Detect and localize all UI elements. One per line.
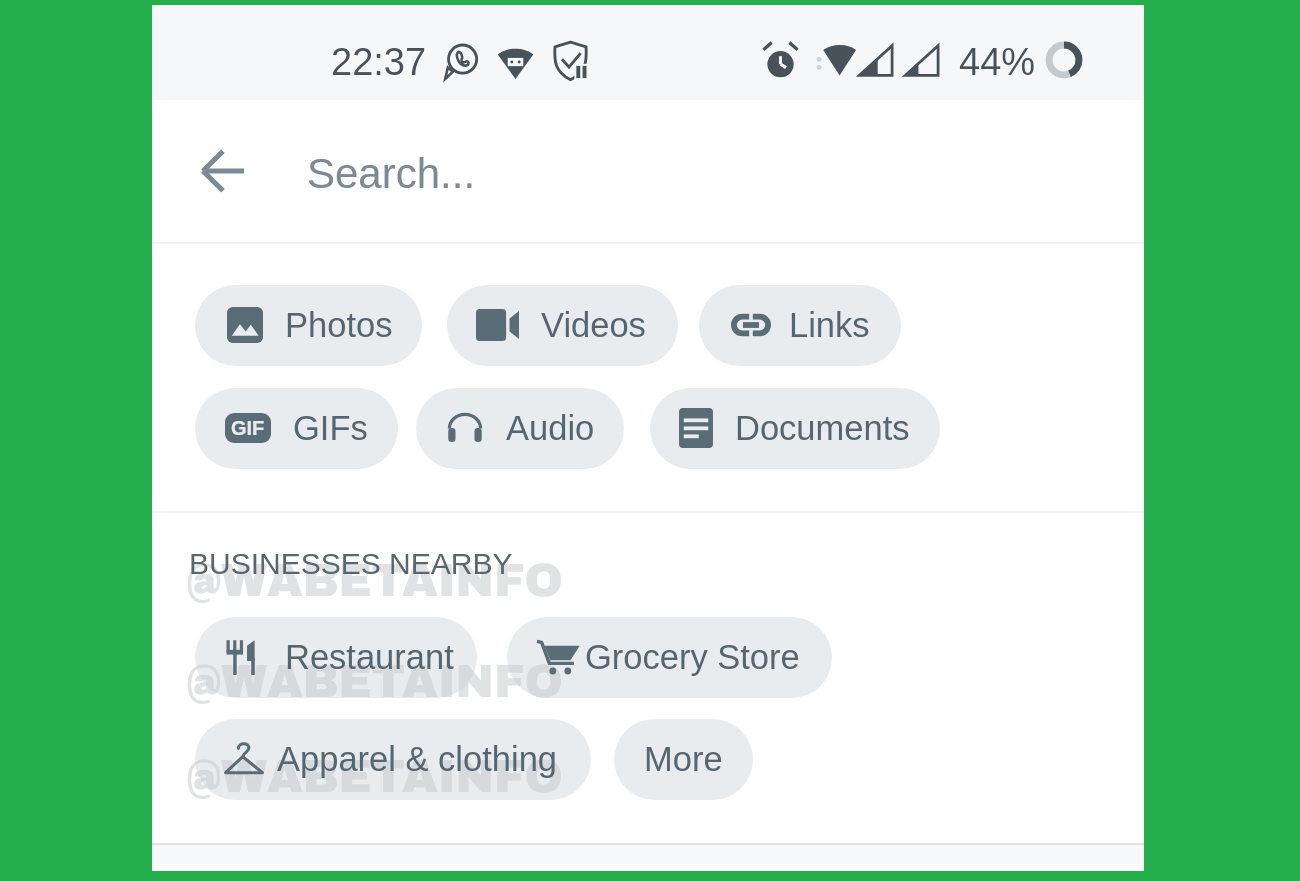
staticText: Links <box>789 306 870 345</box>
button[interactable] <box>447 285 678 366</box>
button[interactable] <box>195 719 591 800</box>
button[interactable] <box>195 617 477 698</box>
staticText: Audio <box>506 409 595 448</box>
staticText: BUSINESSES NEARBY <box>189 547 513 581</box>
staticText: Photos <box>285 306 393 345</box>
button[interactable] <box>507 617 832 698</box>
button[interactable]: Back <box>191 139 255 203</box>
button[interactable] <box>614 719 753 800</box>
button[interactable]: Search... <box>290 100 850 242</box>
staticText: More <box>644 740 723 779</box>
staticText: GIF <box>231 417 265 439</box>
staticText: Videos <box>541 306 646 345</box>
staticText: 22:37 <box>331 41 427 83</box>
staticText: Documents <box>735 409 910 448</box>
button[interactable] <box>650 388 940 469</box>
staticText: GIFs <box>293 409 368 448</box>
button[interactable] <box>699 285 901 366</box>
staticText: Grocery Store <box>585 638 800 677</box>
button[interactable] <box>195 388 398 469</box>
staticText: @WABETAINFO <box>187 556 563 606</box>
button[interactable] <box>195 285 422 366</box>
staticText: Restaurant <box>285 638 454 677</box>
staticText: Apparel & clothing <box>277 740 558 779</box>
staticText: Search... <box>307 150 476 197</box>
staticText: @WABETAINFO <box>187 752 563 802</box>
staticText: 44% <box>959 41 1036 83</box>
button[interactable] <box>416 388 624 469</box>
staticText: @WABETAINFO <box>187 657 563 707</box>
